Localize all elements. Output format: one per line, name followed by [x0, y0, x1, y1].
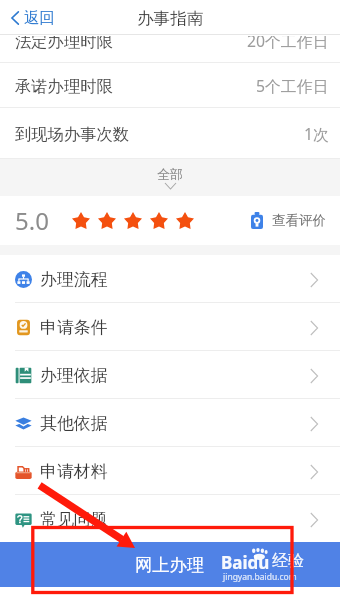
staticText: 承诺办理时限: [15, 76, 113, 97]
staticText: 返回: [24, 8, 55, 28]
staticText: Baidu: [221, 551, 270, 574]
staticText: 20个工作日: [247, 30, 329, 52]
button[interactable]: 网上办理: [0, 542, 340, 587]
button[interactable]: 常见问题: [0, 495, 340, 543]
button[interactable]: 申请条件: [0, 303, 340, 351]
button[interactable]: 申请材料: [0, 447, 340, 495]
staticText: 办事指南: [137, 8, 204, 29]
staticText: 办理依据: [40, 365, 108, 386]
staticText: 申请条件: [40, 317, 108, 338]
staticText: 经验: [272, 551, 304, 571]
button[interactable]: 其他依据: [0, 399, 340, 447]
button[interactable]: 办理依据: [0, 351, 340, 399]
staticText: 办理流程: [40, 269, 108, 290]
staticText: 网上办理: [135, 554, 205, 576]
button[interactable]: 查看评价: [251, 208, 326, 233]
staticText: 1次: [304, 123, 329, 145]
button[interactable]: 到现场办事次数: [0, 108, 340, 159]
staticText: jingyan.baidu.com: [223, 571, 297, 583]
button[interactable]: 承诺办理时限: [0, 63, 340, 108]
staticText: 到现场办事次数: [15, 124, 130, 145]
staticText: 5.0: [15, 204, 49, 237]
staticText: 法定办理时限: [15, 31, 113, 52]
button[interactable]: 法定办理时限: [0, 18, 340, 63]
staticText: 申请材料: [40, 461, 108, 482]
staticText: 其他依据: [40, 413, 108, 434]
staticText: 常见问题: [40, 509, 108, 530]
staticText: 全部: [157, 166, 183, 182]
staticText: 5个工作日: [256, 75, 329, 97]
button[interactable]: 返回: [7, 3, 59, 33]
button[interactable]: 全部: [0, 159, 340, 196]
staticText: 查看评价: [272, 212, 326, 229]
button[interactable]: 办理流程: [0, 255, 340, 303]
